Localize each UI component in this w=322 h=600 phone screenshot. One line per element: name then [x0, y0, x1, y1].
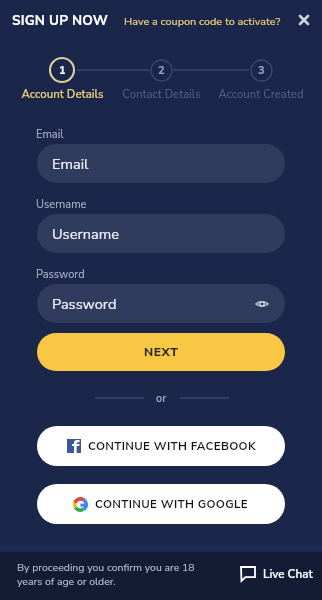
button[interactable]: Password: [37, 284, 285, 323]
button[interactable]: SIGN UP NOW: [12, 11, 109, 29]
button[interactable]: 1: [49, 57, 75, 83]
button[interactable]: CONTINUE WITH FACEBOOK: [37, 426, 285, 466]
staticText: CONTINUE WITH FACEBOOK: [88, 438, 256, 454]
staticText: 2: [158, 63, 165, 78]
staticText: 1: [59, 63, 66, 78]
staticText: 3: [258, 63, 265, 78]
button[interactable]: Have a coupon code to activate?: [124, 14, 281, 29]
button[interactable]: 3: [250, 59, 273, 82]
staticText: Account Details: [21, 86, 104, 102]
button[interactable]: 2: [150, 59, 173, 82]
staticText: Account Created: [218, 86, 304, 102]
staticText: Live Chat: [263, 566, 313, 582]
staticText: Password: [52, 294, 117, 314]
staticText: Email: [36, 127, 64, 142]
staticText: Contact Details: [122, 86, 201, 102]
staticText: Email: [52, 154, 89, 174]
button[interactable]: Email: [37, 144, 285, 183]
button[interactable]: NEXT: [37, 333, 285, 371]
staticText: Password: [36, 267, 85, 282]
staticText: CONTINUE WITH GOOGLE: [95, 496, 249, 512]
button[interactable]: Close: [294, 10, 314, 30]
button[interactable]: CONTINUE WITH GOOGLE: [37, 484, 285, 524]
button[interactable]: Username: [37, 214, 285, 253]
staticText: or: [156, 391, 167, 406]
staticText: Username: [52, 224, 119, 244]
button[interactable]: Show password: [254, 296, 270, 312]
staticText: NEXT: [144, 344, 179, 361]
staticText: By proceeding you confirm you are 18 yea…: [17, 560, 195, 589]
button[interactable]: Live Chat: [240, 566, 313, 582]
staticText: Username: [36, 197, 87, 212]
